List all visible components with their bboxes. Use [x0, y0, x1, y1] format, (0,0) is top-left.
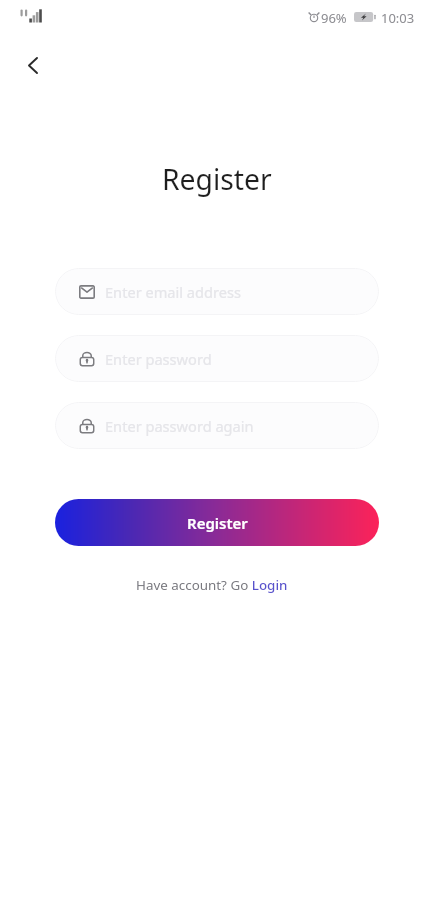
staticText: Enter password again [105, 416, 254, 436]
staticText: 96% [321, 9, 347, 25]
button[interactable]: Enter password again [55, 402, 379, 449]
button[interactable]: Enter email address [55, 268, 379, 315]
button[interactable]: Enter password [55, 335, 379, 382]
button[interactable]: Have account? Go Login [130, 574, 294, 596]
staticText: 10:03 [381, 9, 415, 25]
button[interactable]: Register [55, 499, 379, 546]
staticText: Have account? Go Login [136, 576, 288, 594]
staticText: Register [187, 513, 248, 533]
staticText: Enter password [105, 349, 212, 369]
staticText: Register [162, 160, 272, 199]
staticText: Enter email address [105, 282, 241, 302]
button[interactable]: Back [15, 47, 51, 83]
